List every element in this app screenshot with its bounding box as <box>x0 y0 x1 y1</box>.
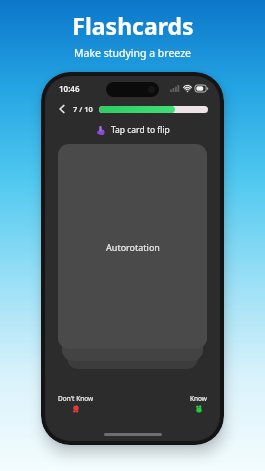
button[interactable]: Know <box>188 394 209 413</box>
button[interactable]: Autorotation <box>58 144 207 349</box>
staticText: 10:46 <box>59 83 80 94</box>
staticText: 7 / 10 <box>73 104 93 114</box>
staticText: Tap card to flip <box>111 124 170 136</box>
staticText: Autorotation <box>106 241 160 253</box>
staticText: Don't Know <box>58 394 94 403</box>
staticText: Know <box>190 394 207 403</box>
button[interactable]: Back <box>53 100 71 118</box>
staticText: Flashcards <box>72 10 194 41</box>
button[interactable]: Don't Know <box>56 394 96 413</box>
staticText: Make studying a breeze <box>74 46 191 60</box>
